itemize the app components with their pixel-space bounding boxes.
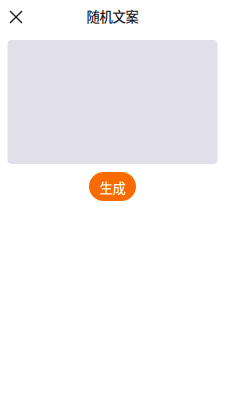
button[interactable]: 生成 xyxy=(89,172,136,201)
staticText: 随机文案 xyxy=(86,6,138,26)
button[interactable]: Close xyxy=(5,6,27,28)
staticText: 生成 xyxy=(99,178,125,197)
